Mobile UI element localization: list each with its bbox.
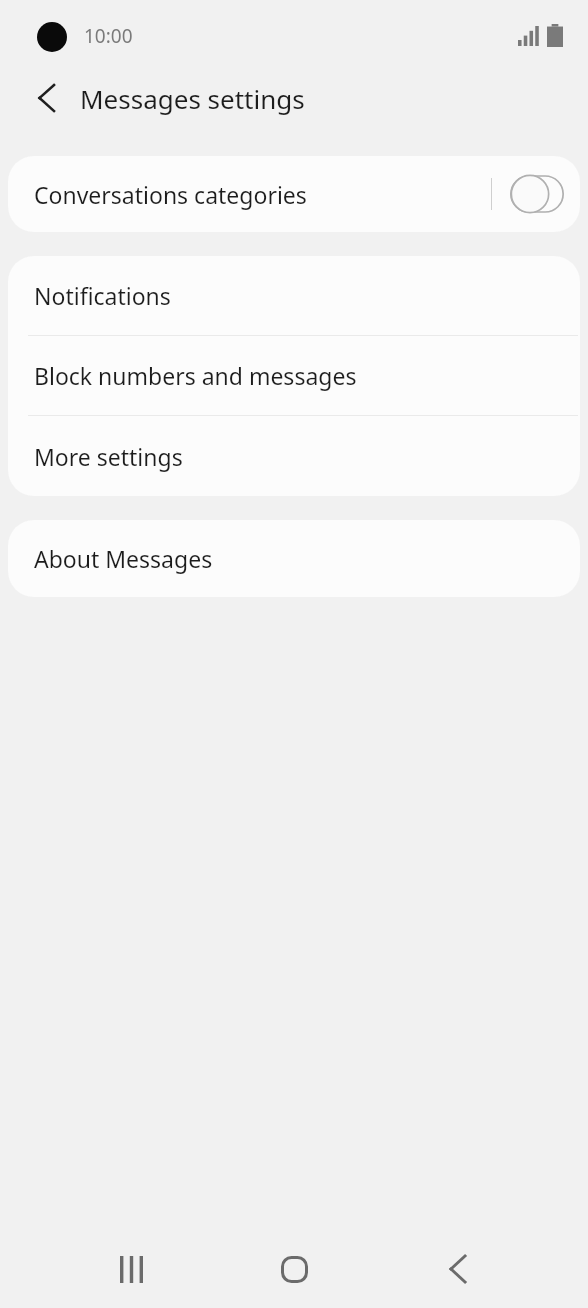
staticText: About Messages: [34, 543, 213, 574]
staticText: More settings: [34, 441, 183, 472]
staticText: Conversations categories: [34, 179, 491, 210]
button[interactable]: Home: [262, 1237, 326, 1301]
staticText: 10:00: [84, 23, 133, 49]
button[interactable]: Conversations categories toggle: [510, 174, 568, 214]
button[interactable]: Conversations categories: [8, 156, 580, 232]
button[interactable]: Recent apps: [99, 1237, 163, 1301]
button[interactable]: Back: [425, 1237, 489, 1301]
staticText: Messages settings: [80, 81, 305, 116]
button[interactable]: Block numbers and messages: [8, 336, 580, 415]
button[interactable]: Notifications: [8, 256, 580, 335]
button[interactable]: More settings: [8, 416, 580, 496]
button[interactable]: About Messages: [8, 520, 580, 597]
button[interactable]: Back: [22, 74, 70, 122]
staticText: Notifications: [34, 280, 171, 311]
staticText: Block numbers and messages: [34, 360, 357, 391]
